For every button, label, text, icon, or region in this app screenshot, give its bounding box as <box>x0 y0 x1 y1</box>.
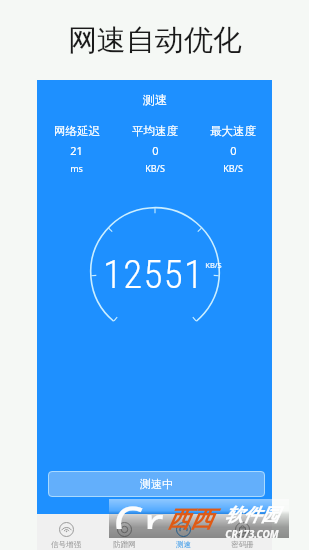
staticText: 信号增强 <box>51 540 81 549</box>
staticText: 密码册 <box>231 540 254 549</box>
staticText: 0 <box>230 143 237 158</box>
button[interactable]: 密码册 <box>213 514 272 550</box>
staticText: 0 <box>152 143 159 158</box>
staticText: 网络延迟 <box>54 124 100 138</box>
staticText: ms <box>70 162 83 174</box>
staticText: 测速中 <box>140 477 173 491</box>
staticText: CR173.COM <box>225 527 279 538</box>
staticText: 平均速度 <box>132 124 178 138</box>
button[interactable]: 信号增强 <box>37 514 95 550</box>
button[interactable]: 测速 <box>154 514 213 550</box>
staticText: KB/S <box>145 162 165 174</box>
staticText: 测速 <box>176 540 191 549</box>
staticText: 最大速度 <box>210 124 256 138</box>
staticText: 防蹭网 <box>113 540 136 549</box>
staticText: KB/S <box>205 260 222 270</box>
staticText: 网速自动优化 <box>68 22 242 59</box>
staticText: Cr <box>113 490 164 529</box>
button[interactable]: 防蹭网 <box>95 514 154 550</box>
staticText: 21 <box>70 143 83 158</box>
staticText: 软件园 <box>225 504 279 527</box>
staticText: KB/S <box>223 162 243 174</box>
button[interactable]: 测速中 <box>48 471 265 497</box>
staticText: 西西 <box>167 505 213 534</box>
staticText: 测速 <box>143 92 167 107</box>
staticText: 12551 <box>103 252 205 298</box>
